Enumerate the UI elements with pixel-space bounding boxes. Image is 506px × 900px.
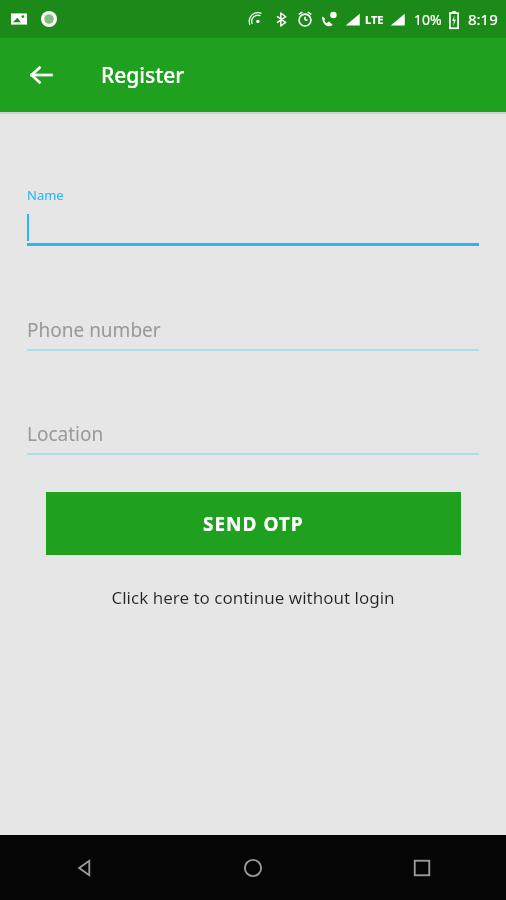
staticText: 10% <box>414 10 442 29</box>
button[interactable]: Click here to continue without login <box>0 586 506 609</box>
button[interactable]: Back <box>0 835 168 900</box>
staticText: Location <box>27 421 104 447</box>
button[interactable]: Name <box>27 186 479 246</box>
staticText: Click here to continue without login <box>111 586 395 609</box>
button[interactable]: Recent apps <box>337 835 506 900</box>
button[interactable]: Back <box>17 51 65 99</box>
staticText: 8:19 <box>468 9 498 29</box>
button[interactable]: Location <box>27 419 479 455</box>
staticText: SEND OTP <box>203 511 304 537</box>
button[interactable]: SEND OTP <box>46 492 461 555</box>
staticText: LTE <box>365 12 384 27</box>
staticText: Register <box>101 61 185 90</box>
button[interactable]: Phone number <box>27 315 479 351</box>
staticText: Name <box>27 186 64 204</box>
button[interactable]: Home <box>168 835 337 900</box>
staticText: Phone number <box>27 317 161 343</box>
